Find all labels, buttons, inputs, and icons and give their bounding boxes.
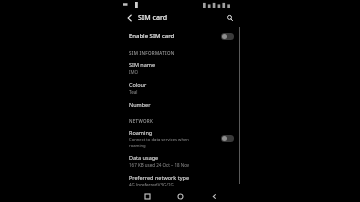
- button[interactable]: Back: [208, 190, 220, 202]
- staticText: Number: [129, 101, 151, 108]
- staticText: Colour: [129, 81, 147, 88]
- button[interactable]: Recent apps: [141, 190, 153, 202]
- staticText: Enable SIM card: [129, 32, 175, 40]
- button[interactable]: Colour: [119, 78, 241, 98]
- staticText: IMO: [129, 69, 139, 75]
- staticText: SIM name: [129, 61, 156, 68]
- staticText: Connect to data services when roaming: [129, 137, 189, 148]
- button[interactable]: Preferred network type: [119, 171, 241, 189]
- staticText: 4G (preferred)/3G/2G: [129, 182, 174, 186]
- button[interactable]: Data usage: [119, 151, 241, 171]
- button[interactable]: Home: [174, 190, 186, 202]
- staticText: 167 KB used 24 Oct – 18 Nov: [129, 162, 190, 168]
- button[interactable]: Search: [224, 12, 236, 24]
- staticText: Roaming: [129, 129, 153, 136]
- button[interactable]: Enable SIM card: [119, 29, 241, 43]
- button[interactable]: Navigate up: [124, 12, 136, 24]
- staticText: Data usage: [129, 154, 159, 161]
- staticText: SIM card: [138, 13, 168, 23]
- button[interactable]: Roaming: [119, 126, 241, 151]
- button[interactable]: Off: [221, 135, 234, 142]
- staticText: SIM INFORMATION: [129, 50, 175, 56]
- staticText: NETWORK: [129, 118, 154, 124]
- button[interactable]: SIM name: [119, 58, 241, 78]
- staticText: Preferred network type: [129, 174, 189, 181]
- staticText: Teal: [129, 89, 138, 95]
- button[interactable]: Number: [119, 98, 241, 111]
- button[interactable]: Off: [221, 33, 234, 40]
